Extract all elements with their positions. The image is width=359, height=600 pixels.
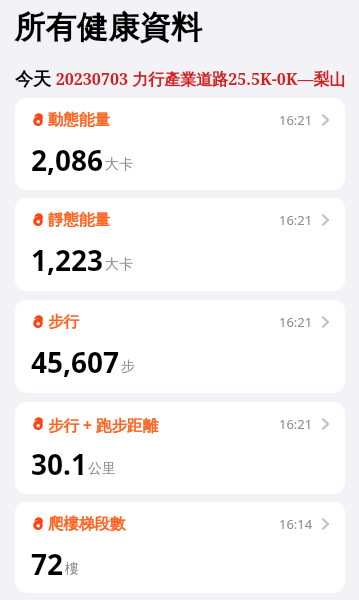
staticText: 16:21	[279, 211, 313, 229]
staticText: 45,607	[31, 343, 120, 381]
staticText: 步	[121, 358, 135, 376]
staticText: 1,223	[31, 241, 104, 279]
staticText: 72	[31, 545, 64, 583]
button[interactable]: 步行 + 跑步距離	[15, 402, 345, 494]
staticText: 30.1	[31, 445, 87, 483]
staticText: 步行 + 跑步距離	[48, 414, 158, 435]
staticText: 16:21	[279, 313, 313, 331]
staticText: 靜態能量	[48, 210, 110, 230]
staticText: 2,086	[31, 141, 104, 179]
staticText: 今天 20230703 力行產業道路25.5K-0K—梨山	[15, 66, 346, 91]
staticText: 動態能量	[48, 110, 110, 130]
staticText: 步行	[48, 312, 79, 332]
staticText: 16:21	[279, 415, 313, 433]
staticText: 所有健康資料	[14, 8, 203, 47]
button[interactable]: 步行	[15, 300, 345, 393]
staticText: 公里	[88, 460, 116, 478]
button[interactable]: 靜態能量	[15, 198, 345, 291]
button[interactable]: 動態能量	[15, 98, 345, 190]
staticText: 爬樓梯段數	[48, 514, 126, 534]
staticText: 16:14	[279, 515, 313, 533]
button[interactable]: 爬樓梯段數	[15, 502, 345, 593]
staticText: 樓	[65, 560, 79, 578]
staticText: 16:21	[279, 111, 313, 129]
staticText: 大卡	[105, 256, 133, 274]
staticText: 大卡	[105, 156, 133, 174]
